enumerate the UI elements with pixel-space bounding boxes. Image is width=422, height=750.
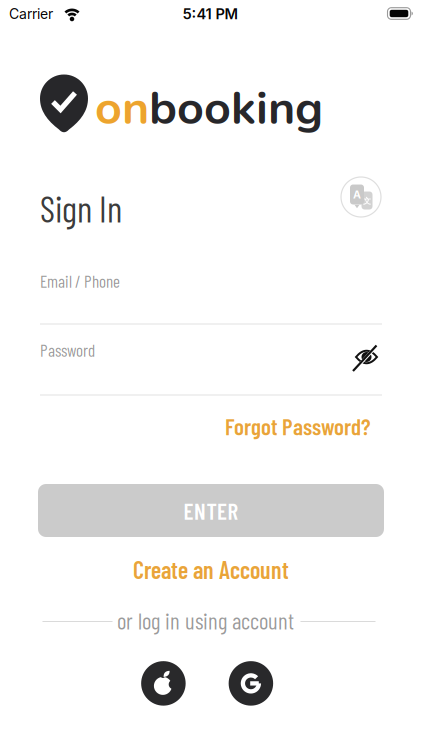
button[interactable]: Forgot Password? [40, 412, 370, 440]
staticText: booking [149, 77, 323, 140]
staticText: 文 [363, 196, 371, 206]
button[interactable]: Show password [354, 347, 378, 367]
staticText: Password [40, 340, 95, 360]
button[interactable]: Create an Account [133, 555, 289, 584]
staticText: ENTER [183, 497, 238, 524]
staticText: Carrier [9, 5, 53, 22]
staticText: Email / Phone [40, 271, 120, 291]
staticText: or log in using account [117, 607, 294, 634]
staticText: A [353, 188, 361, 201]
button[interactable]: Sign in with Google [229, 661, 273, 706]
button[interactable]: ENTER [38, 484, 384, 537]
staticText: Forgot Password? [225, 412, 370, 440]
button[interactable]: Sign in with Apple [141, 661, 186, 706]
staticText: 5:41 PM [182, 5, 238, 23]
staticText: on [95, 77, 149, 140]
button[interactable]: Email / Phone [40, 270, 382, 325]
staticText: Sign In [40, 186, 122, 230]
staticText: Create an Account [133, 555, 289, 584]
button[interactable]: Change language [341, 177, 381, 217]
button[interactable]: Password [40, 338, 382, 395]
